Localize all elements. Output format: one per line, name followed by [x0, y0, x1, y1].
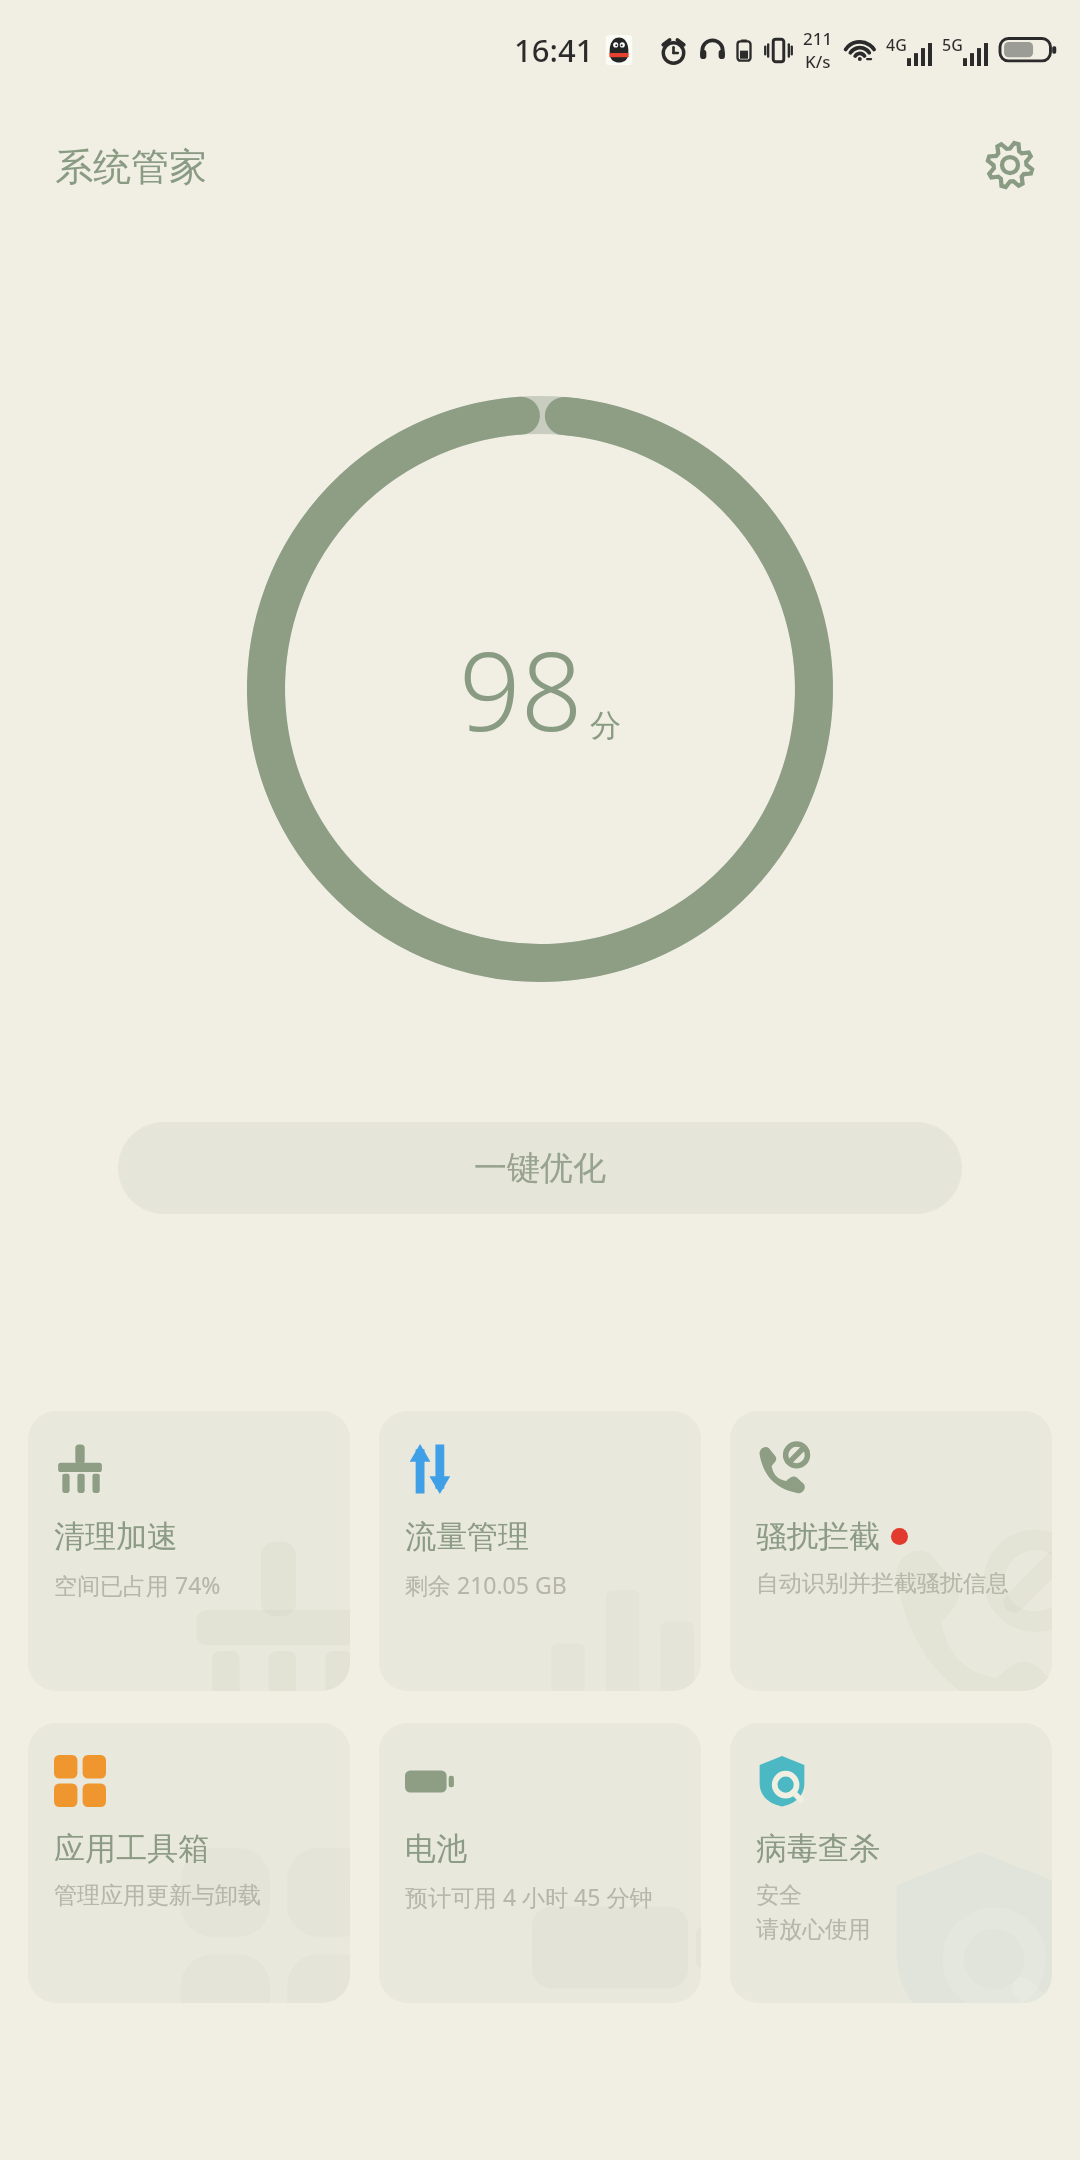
button[interactable]: 清理加速	[28, 1411, 350, 1691]
staticText: 病毒查杀	[756, 1829, 880, 1868]
button[interactable]: Settings	[978, 133, 1042, 197]
button[interactable]: 一键优化	[118, 1122, 962, 1214]
staticText: 系统管家	[55, 143, 207, 191]
staticText: 清理加速	[54, 1517, 178, 1556]
button[interactable]: 流量管理	[379, 1411, 701, 1691]
button[interactable]: 电池	[379, 1723, 701, 2003]
staticText: K/s	[805, 50, 831, 73]
staticText: 4G	[886, 34, 907, 56]
button[interactable]: 骚扰拦截	[730, 1411, 1052, 1691]
staticText: 自动识别并拦截骚扰信息	[756, 1569, 1009, 1598]
staticText: 电池	[405, 1829, 467, 1868]
staticText: 98	[459, 616, 583, 763]
staticText: 16:41	[514, 29, 594, 71]
button[interactable]: 应用工具箱	[28, 1723, 350, 2003]
staticText: 管理应用更新与卸载	[54, 1881, 261, 1910]
staticText: 剩余 210.05 GB	[405, 1569, 567, 1600]
staticText: 空间已占用 74%	[54, 1569, 221, 1600]
staticText: 安全 请放心使用	[756, 1881, 871, 1943]
staticText: 分	[590, 706, 621, 745]
staticText: 一键优化	[474, 1147, 606, 1189]
staticText: 应用工具箱	[54, 1829, 209, 1868]
staticText: 211	[803, 27, 833, 50]
staticText: 骚扰拦截	[756, 1517, 880, 1556]
staticText: 5G	[942, 34, 963, 56]
staticText: 流量管理	[405, 1517, 529, 1556]
staticText: 预计可用 4 小时 45 分钟	[405, 1881, 653, 1912]
button[interactable]: 病毒查杀	[730, 1723, 1052, 2003]
